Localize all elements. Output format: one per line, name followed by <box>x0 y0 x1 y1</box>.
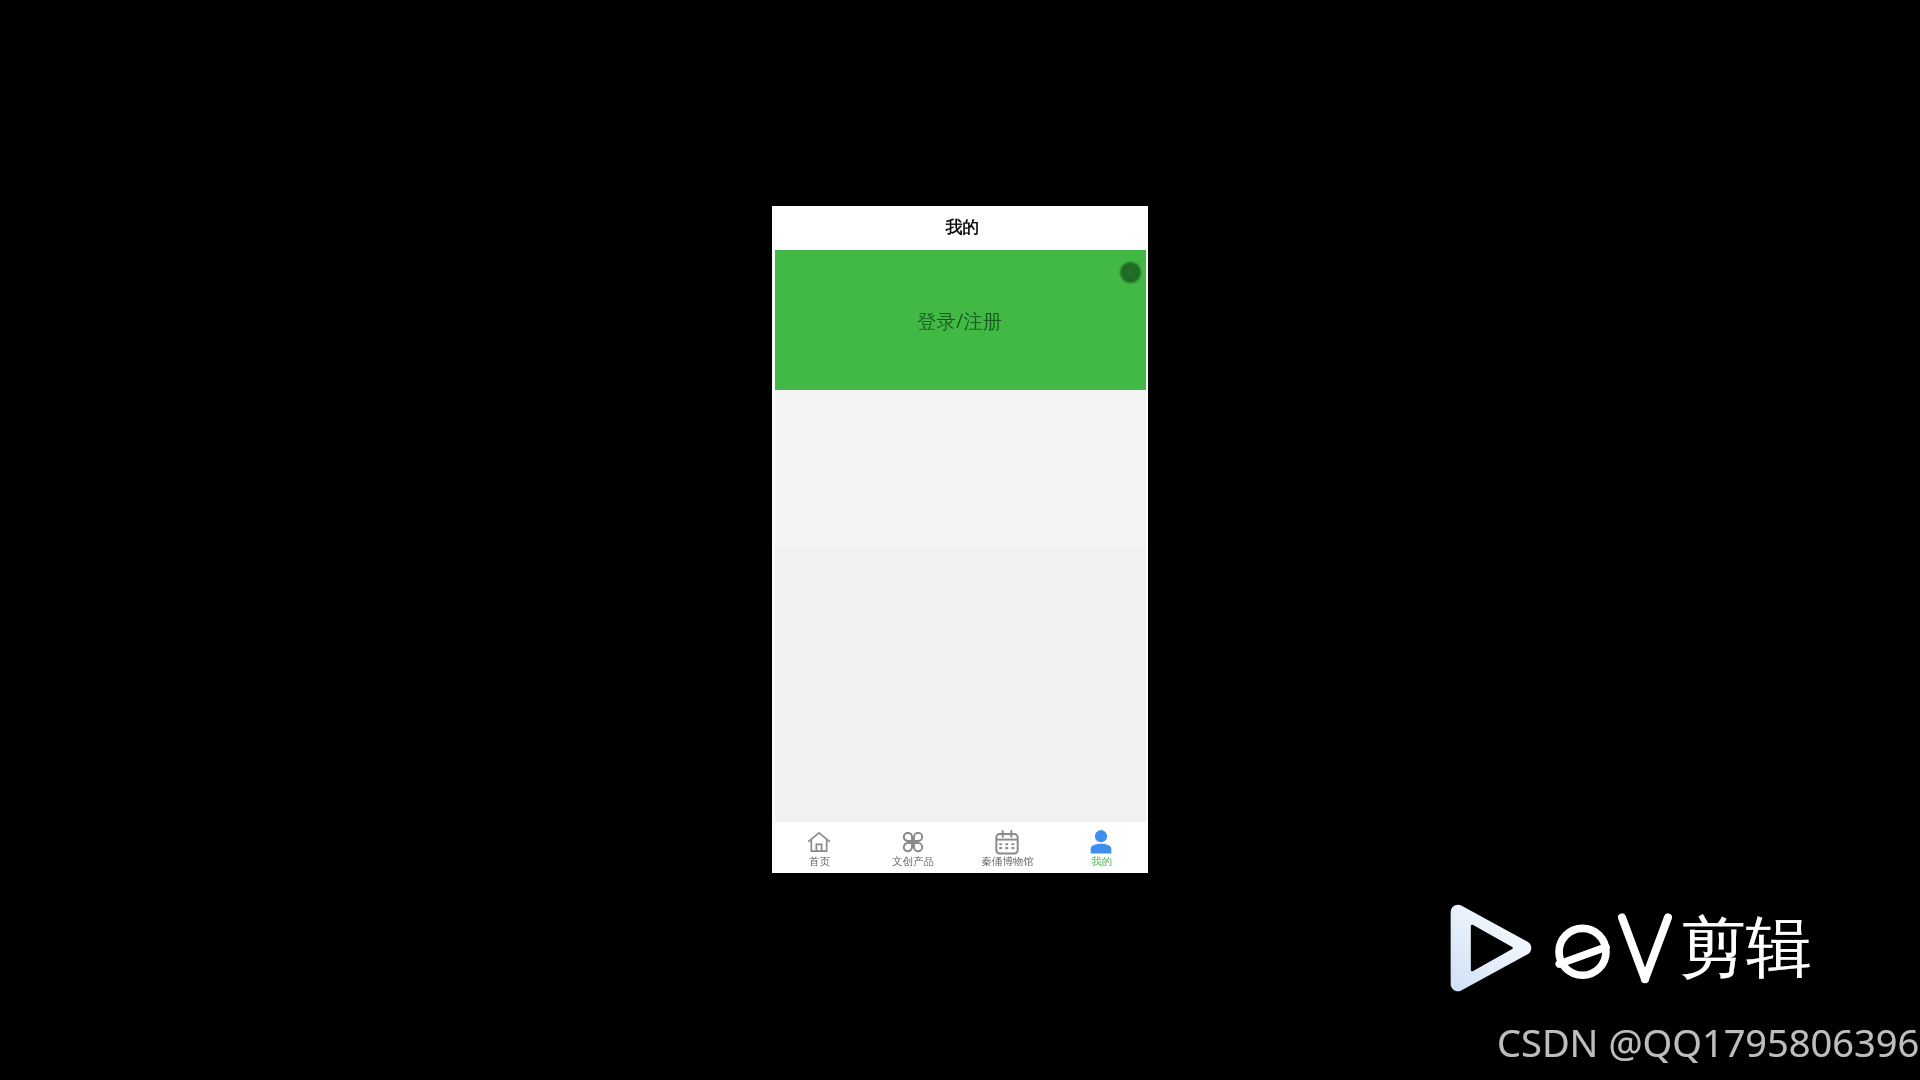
staticText: 首页 <box>809 855 830 868</box>
button[interactable]: 文创产品 <box>866 822 960 873</box>
staticText: 我的 <box>945 217 979 238</box>
staticText: CSDN @QQ1795806396 <box>1497 1016 1920 1068</box>
button[interactable]: Settings <box>1119 261 1142 284</box>
button[interactable]: 秦俑博物馆 <box>960 822 1054 873</box>
staticText: 我的 <box>1091 855 1112 868</box>
button[interactable]: 我的 <box>1054 822 1148 873</box>
staticText: 文创产品 <box>892 855 934 868</box>
staticText: 登录/注册 <box>917 307 1003 334</box>
staticText: 秦俑博物馆 <box>981 855 1034 868</box>
button[interactable]: 登录/注册 <box>772 250 1148 390</box>
staticText: 剪辑 <box>1680 906 1812 989</box>
button[interactable]: 首页 <box>772 822 866 873</box>
